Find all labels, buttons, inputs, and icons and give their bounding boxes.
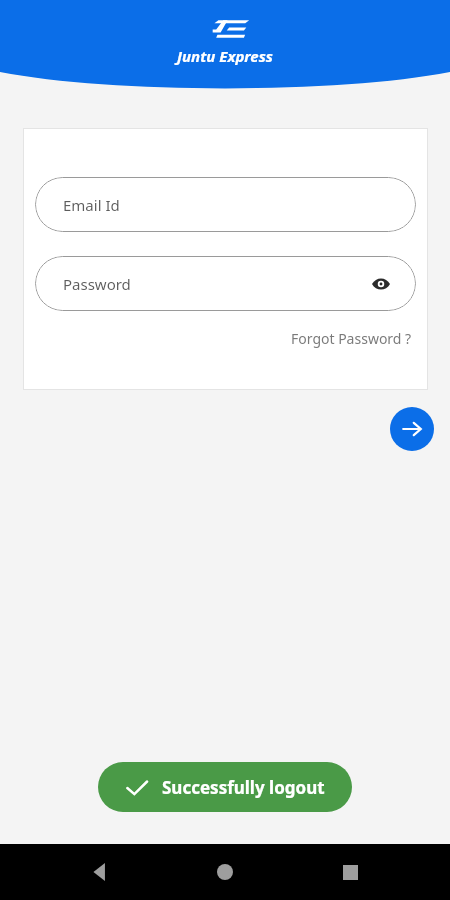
button[interactable]: Email Id — [35, 177, 416, 232]
button[interactable]: Password — [35, 256, 416, 311]
button[interactable]: Forgot Password ? — [287, 325, 416, 352]
button[interactable]: Recent apps — [326, 848, 374, 896]
staticText: Juntu Express — [177, 46, 273, 66]
staticText: Password — [63, 274, 131, 294]
button[interactable]: Back — [77, 848, 125, 896]
button[interactable]: Sign in — [390, 407, 434, 451]
staticText: Successfully logout — [162, 776, 325, 799]
button[interactable]: Successfully logout — [98, 762, 352, 812]
button[interactable]: Home — [201, 848, 249, 896]
staticText: Forgot Password ? — [291, 329, 412, 348]
staticText: Email Id — [63, 195, 120, 215]
button[interactable]: Show password — [366, 269, 396, 299]
